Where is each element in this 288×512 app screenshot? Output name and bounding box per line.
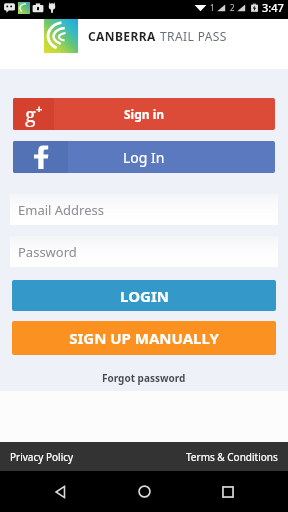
staticText: 1	[210, 2, 215, 13]
button[interactable]: Password	[10, 236, 278, 267]
button[interactable]: Terms & Conditions	[186, 450, 278, 464]
button[interactable]: Home	[120, 471, 168, 512]
button[interactable]: Back	[36, 471, 84, 512]
button[interactable]: Email Address	[10, 194, 278, 225]
staticText: SIGN UP MANUALLY	[69, 328, 219, 348]
button[interactable]: LOGIN	[12, 280, 276, 311]
button[interactable]: Privacy Policy	[10, 450, 74, 464]
button[interactable]: SIGN UP MANUALLY	[12, 321, 276, 355]
staticText: CANBERRA	[88, 28, 156, 44]
staticText: 2	[230, 2, 235, 13]
staticText: Privacy Policy	[10, 450, 74, 464]
staticText: +	[36, 101, 43, 116]
button[interactable]: Forgot password	[0, 367, 288, 389]
button[interactable]: Recent apps	[204, 471, 252, 512]
staticText: 3:47	[262, 0, 284, 15]
staticText: TRAIL PASS	[160, 28, 227, 44]
button[interactable]: Log In	[13, 141, 275, 173]
staticText: Email Address	[18, 201, 104, 219]
staticText: Forgot password	[102, 371, 186, 385]
staticText: Password	[18, 243, 77, 261]
staticText: Log In	[123, 148, 165, 167]
staticText: Terms & Conditions	[186, 450, 278, 464]
button[interactable]: g	[13, 98, 275, 130]
staticText: LOGIN	[120, 286, 169, 306]
staticText: g	[25, 101, 36, 128]
staticText: Sign in	[124, 106, 165, 122]
